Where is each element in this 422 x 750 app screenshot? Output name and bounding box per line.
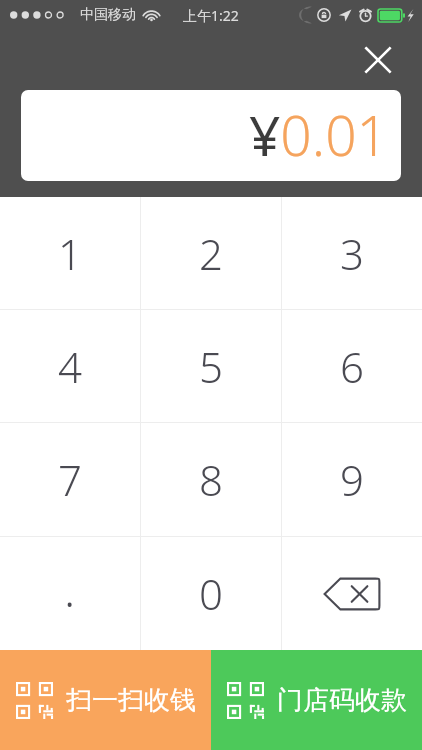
button[interactable]: 3 xyxy=(281,197,422,309)
button[interactable]: 门店码收款 xyxy=(211,650,422,750)
button[interactable]: ¥0.01 xyxy=(21,90,401,181)
button[interactable]: 扫一扫收钱 xyxy=(0,650,211,750)
staticText: 8 xyxy=(199,451,223,508)
button[interactable]: 0 xyxy=(140,537,281,650)
staticText: 7 xyxy=(58,451,82,508)
staticText: 9 xyxy=(340,451,364,508)
staticText: 2 xyxy=(199,225,223,282)
button[interactable]: 4 xyxy=(0,310,140,422)
staticText: 3 xyxy=(340,225,364,282)
button[interactable]: 5 xyxy=(140,310,281,422)
staticText: 0 xyxy=(199,565,223,622)
button[interactable]: 2 xyxy=(140,197,281,309)
staticText: ¥0.01 xyxy=(248,97,388,172)
button[interactable]: 9 xyxy=(281,423,422,536)
staticText: 门店码收款 xyxy=(277,684,407,717)
button[interactable]: Backspace xyxy=(281,537,422,650)
button[interactable]: 6 xyxy=(281,310,422,422)
staticText: 中国移动 xyxy=(80,6,136,24)
staticText: 5 xyxy=(199,338,223,395)
staticText: . xyxy=(64,558,76,621)
button[interactable]: 8 xyxy=(140,423,281,536)
button[interactable]: 7 xyxy=(0,423,140,536)
staticText: 1 xyxy=(58,225,82,282)
button[interactable]: Close xyxy=(358,40,398,80)
staticText: 4 xyxy=(58,338,82,395)
staticText: 6 xyxy=(340,338,364,395)
button[interactable]: . xyxy=(0,537,140,650)
button[interactable]: 1 xyxy=(0,197,140,309)
staticText: 上午1:22 xyxy=(183,6,239,25)
staticText: 扫一扫收钱 xyxy=(66,684,196,717)
